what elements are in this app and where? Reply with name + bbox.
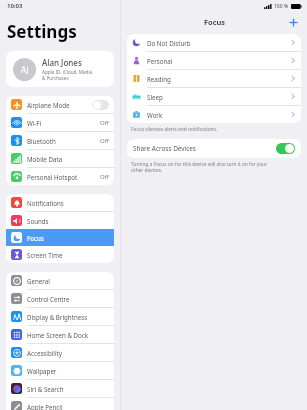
staticText: Home Screen & Dock xyxy=(27,331,89,339)
button[interactable]: AJ xyxy=(6,51,114,87)
staticText: Personal Hotspot xyxy=(27,173,78,181)
staticText: Reading xyxy=(147,75,171,83)
staticText: Personal xyxy=(147,57,173,65)
button[interactable]: Display & Brightness xyxy=(6,308,114,325)
button[interactable]: Focus xyxy=(6,229,114,246)
button[interactable]: Apple Pencil xyxy=(6,398,114,410)
staticText: Focus xyxy=(27,234,44,242)
button[interactable]: Personal Hotspot xyxy=(6,168,114,185)
button[interactable]: Notifications xyxy=(6,194,114,211)
button[interactable]: Personal xyxy=(127,52,301,69)
button[interactable]: Bluetooth xyxy=(6,132,114,149)
staticText: 10:03 xyxy=(7,2,23,10)
staticText: Off xyxy=(100,119,109,127)
staticText: General xyxy=(27,277,50,285)
button[interactable]: Siri & Search xyxy=(6,380,114,397)
button[interactable]: Screen Time xyxy=(6,246,114,263)
staticText: AJ xyxy=(21,64,29,75)
staticText: Display & Brightness xyxy=(27,313,88,321)
button[interactable]: Sounds xyxy=(6,212,114,229)
staticText: Screen Time xyxy=(27,251,63,259)
staticText: Do Not Disturb xyxy=(147,39,191,47)
staticText: Work xyxy=(147,111,163,119)
button[interactable]: Share Across Devices xyxy=(127,139,301,158)
staticText: Sleep xyxy=(147,93,163,101)
staticText: Apple Pencil xyxy=(27,403,63,410)
button[interactable]: Airplane Mode toggle xyxy=(92,100,109,110)
staticText: Focus silences alerts and notifications. xyxy=(131,126,218,133)
button[interactable]: Airplane Mode xyxy=(6,96,114,113)
button[interactable]: Control Centre xyxy=(6,290,114,307)
staticText: Off xyxy=(100,137,109,145)
button[interactable]: Home Screen & Dock xyxy=(6,326,114,343)
staticText: Sounds xyxy=(27,217,49,225)
staticText: Off xyxy=(100,173,109,181)
staticText: Turning a Focus on for this device will … xyxy=(131,161,268,173)
staticText: Settings xyxy=(7,20,77,43)
staticText: Notifications xyxy=(27,199,64,207)
staticText: Alan Jones xyxy=(42,57,82,68)
staticText: Apple ID, iCloud, Media & Purchases xyxy=(42,69,93,81)
button[interactable]: Share Across Devices toggle xyxy=(276,143,295,154)
staticText: Accessibility xyxy=(27,349,62,357)
button[interactable]: Wallpaper xyxy=(6,362,114,379)
button[interactable]: General xyxy=(6,272,114,289)
button[interactable]: Accessibility xyxy=(6,344,114,361)
button[interactable]: Mobile Data xyxy=(6,150,114,167)
button[interactable]: Reading xyxy=(127,70,301,87)
button[interactable]: Do Not Disturb xyxy=(127,34,301,51)
staticText: Airplane Mode xyxy=(27,101,70,109)
button[interactable]: Work xyxy=(127,106,301,123)
staticText: Bluetooth xyxy=(27,137,56,145)
staticText: Control Centre xyxy=(27,295,70,303)
button[interactable]: Wi-Fi xyxy=(6,114,114,131)
staticText: Focus xyxy=(204,17,225,27)
staticText: Share Across Devices xyxy=(133,144,196,153)
button[interactable]: Add Focus xyxy=(286,15,300,29)
staticText: Wallpaper xyxy=(27,367,57,375)
staticText: Mobile Data xyxy=(27,155,63,163)
staticText: 100 % xyxy=(274,3,289,10)
staticText: Wi-Fi xyxy=(27,119,42,127)
staticText: Siri & Search xyxy=(27,385,64,393)
button[interactable]: Sleep xyxy=(127,88,301,105)
